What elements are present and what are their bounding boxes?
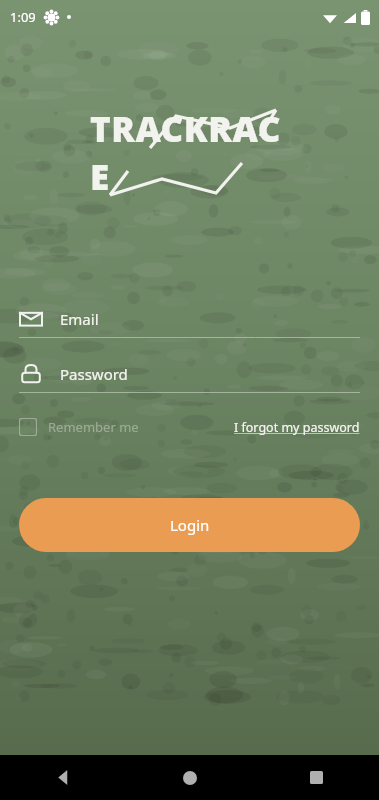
staticText: Login: [170, 515, 210, 535]
staticText: Remember me: [48, 418, 139, 436]
staticText: Email: [60, 309, 99, 329]
staticText: I forgot my password: [234, 419, 360, 436]
button[interactable]: Back: [0, 755, 127, 800]
other: Password: [19, 362, 43, 386]
staticText: TRACKRACE: [90, 105, 290, 201]
button[interactable]: Login: [19, 498, 360, 552]
button[interactable]: Password: [19, 355, 360, 393]
button[interactable]: Home: [127, 755, 253, 800]
staticText: Password: [60, 364, 128, 384]
button[interactable]: Recent apps: [253, 755, 379, 800]
other: Email: [19, 307, 43, 331]
button[interactable]: Email: [19, 300, 360, 338]
button[interactable]: Remember me: [19, 418, 145, 436]
staticText: 1:09: [10, 8, 36, 26]
button[interactable]: I forgot my password: [234, 419, 360, 436]
